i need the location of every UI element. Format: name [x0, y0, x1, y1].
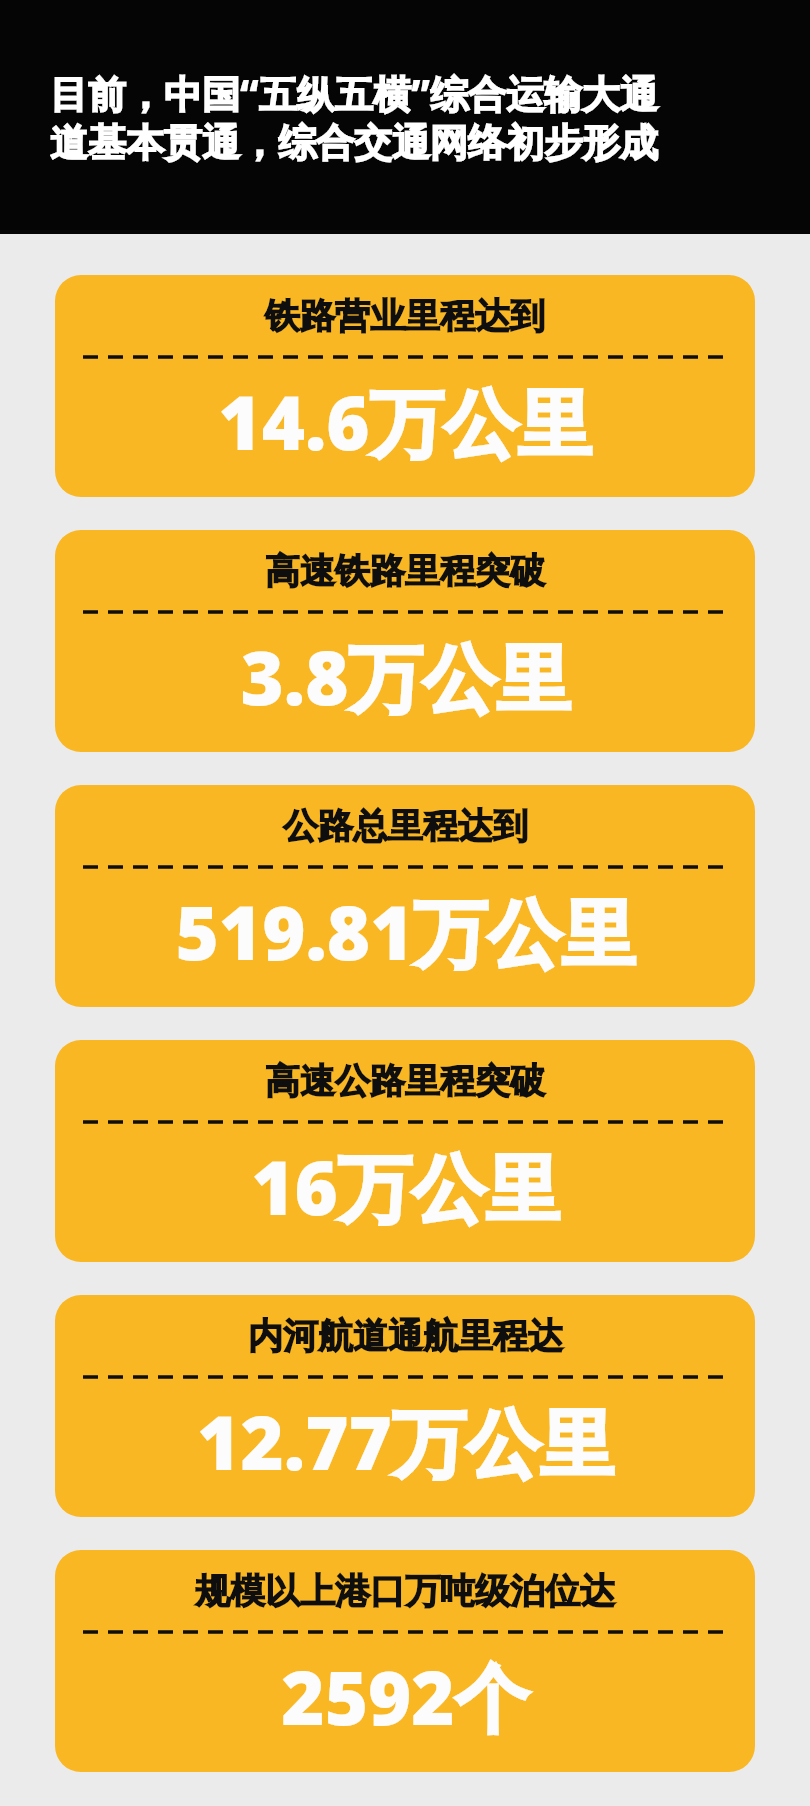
button[interactable]: 铁路营业里程达到 [55, 275, 755, 497]
staticText: 高速公路里程突破 [265, 1059, 545, 1103]
staticText: 14.6万公里 [218, 371, 592, 472]
staticText: 规模以上港口万吨级泊位达 [195, 1569, 615, 1613]
staticText: 目前，中国“五纵五横”综合运输大通 [50, 67, 658, 119]
staticText: 铁路营业里程达到 [265, 294, 545, 338]
staticText: 内河航道通航里程达 [248, 1314, 563, 1358]
button[interactable]: 规模以上港口万吨级泊位达 [55, 1550, 755, 1772]
button[interactable]: 高速公路里程突破 [55, 1040, 755, 1262]
staticText: 公路总里程达到 [283, 804, 528, 848]
staticText: 2592个 [281, 1646, 529, 1747]
staticText: 3.8万公里 [240, 626, 571, 727]
staticText: 道基本贯通，综合交通网络初步形成 [50, 119, 658, 167]
button[interactable]: 内河航道通航里程达 [55, 1295, 755, 1517]
button[interactable]: 高速铁路里程突破 [55, 530, 755, 752]
button[interactable]: 公路总里程达到 [55, 785, 755, 1007]
staticText: 16万公里 [251, 1136, 560, 1237]
staticText: 12.77万公里 [197, 1391, 614, 1492]
staticText: 高速铁路里程突破 [265, 549, 545, 593]
staticText: 519.81万公里 [175, 881, 636, 982]
